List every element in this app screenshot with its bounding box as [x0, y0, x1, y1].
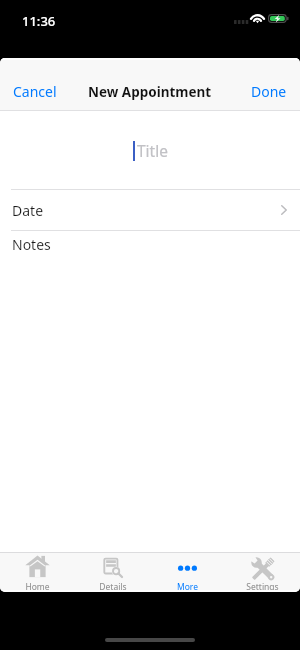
- staticText: Settings: [246, 581, 279, 592]
- button[interactable]: Cancel: [0, 74, 70, 110]
- staticText: Cancel: [13, 82, 57, 101]
- staticText: Title: [137, 140, 168, 161]
- button[interactable]: Settings: [225, 553, 300, 590]
- staticText: Details: [99, 581, 127, 592]
- button[interactable]: Done: [238, 74, 300, 110]
- button[interactable]: Details: [75, 553, 150, 590]
- staticText: Notes: [12, 235, 51, 254]
- button[interactable]: Notes: [0, 231, 300, 351]
- button[interactable]: More: [150, 553, 225, 590]
- button[interactable]: Date: [0, 190, 300, 230]
- staticText: Date: [12, 201, 44, 220]
- staticText: Home: [25, 581, 50, 592]
- staticText: New Appointment: [88, 83, 212, 101]
- staticText: 11:36: [22, 12, 56, 30]
- button[interactable]: Title: [0, 111, 300, 189]
- button[interactable]: Home: [0, 553, 75, 590]
- staticText: Done: [251, 82, 287, 101]
- staticText: More: [177, 581, 198, 592]
